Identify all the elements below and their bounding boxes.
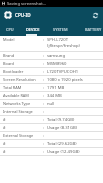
- staticText: 1791 MB: [47, 85, 65, 91]
- staticText: :: [43, 149, 45, 155]
- button[interactable]: #: [0, 124, 103, 132]
- button[interactable]: #: [0, 148, 103, 156]
- staticText: External Storage: [3, 133, 34, 138]
- staticText: Saving screenshot...: [7, 1, 47, 7]
- staticText: CPU-ID: [15, 12, 31, 18]
- button[interactable]: DEVICE: [19, 22, 46, 36]
- staticText: #: [3, 149, 6, 154]
- button[interactable]: Model: [0, 36, 103, 52]
- button[interactable]: Screen Resolution: [0, 76, 103, 84]
- staticText: :: [43, 53, 45, 59]
- staticText: :: [43, 117, 45, 123]
- staticText: :: [43, 93, 45, 99]
- staticText: Board: [3, 61, 14, 66]
- button[interactable]: Internal Storage: [0, 108, 103, 116]
- staticText: :: [43, 101, 45, 107]
- staticText: #: [3, 117, 6, 122]
- staticText: 1080 x 1920 pixels: [47, 77, 83, 83]
- staticText: :: [43, 69, 45, 75]
- staticText: samsung: [47, 53, 66, 59]
- button[interactable]: Available RAM: [0, 92, 103, 100]
- button[interactable]: SYSTEM: [46, 22, 75, 36]
- staticText: Screen Resolution: [3, 77, 36, 82]
- staticText: CPU: [6, 27, 14, 32]
- staticText: :: [43, 85, 45, 91]
- button[interactable]: Refresh: [88, 8, 102, 22]
- staticText: Total (9.74GB): [47, 117, 75, 123]
- staticText: null: [47, 101, 55, 107]
- staticText: :: [43, 61, 45, 67]
- staticText: :: [43, 125, 45, 131]
- staticText: Model: [3, 37, 15, 42]
- staticText: Total (29.62GB): [47, 141, 77, 147]
- button[interactable]: #: [0, 140, 103, 148]
- staticText: (jfltespr/freshxp): [47, 43, 80, 49]
- staticText: L720TVPUCOH1: [47, 69, 79, 75]
- button[interactable]: BATTERY: [79, 22, 103, 36]
- button[interactable]: Brand: [0, 52, 103, 60]
- staticText: Usage (8.31GB): [47, 125, 78, 131]
- button[interactable]: Board: [0, 60, 103, 68]
- staticText: MSM8960: [47, 61, 67, 67]
- button[interactable]: Networks Type: [0, 100, 103, 108]
- button[interactable]: External Storage: [0, 132, 103, 140]
- staticText: SYSTEM: [53, 27, 68, 32]
- staticText: Usage (12.49GB): [47, 149, 80, 155]
- staticText: SPH-L720T: [47, 37, 68, 43]
- staticText: BATTERY: [85, 27, 102, 32]
- staticText: #: [3, 125, 6, 130]
- staticText: #: [3, 141, 6, 146]
- staticText: Bootloader: [3, 69, 24, 74]
- staticText: :: [43, 141, 45, 147]
- button[interactable]: #: [0, 116, 103, 124]
- button[interactable]: Total RAM: [0, 84, 103, 92]
- staticText: :: [43, 77, 45, 83]
- staticText: 344 MB: [47, 93, 62, 99]
- staticText: Brand: [3, 53, 15, 58]
- staticText: DEVICE: [26, 27, 40, 32]
- staticText: :: [43, 133, 45, 139]
- button[interactable]: Bootloader: [0, 68, 103, 76]
- staticText: :: [43, 37, 45, 43]
- staticText: Available RAM: [3, 93, 29, 98]
- staticText: Total RAM: [3, 85, 22, 90]
- staticText: :: [43, 109, 45, 115]
- button[interactable]: CPU: [0, 22, 19, 36]
- staticText: Networks Type: [3, 101, 31, 106]
- staticText: Internal Storage: [3, 109, 33, 114]
